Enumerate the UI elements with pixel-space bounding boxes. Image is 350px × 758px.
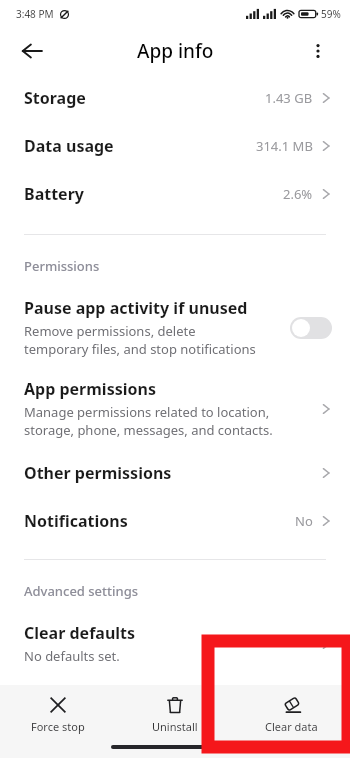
button[interactable]: Notifications	[0, 497, 350, 545]
staticText: Remove permissions, delete	[24, 322, 196, 340]
button[interactable]: Uninstall	[116, 689, 233, 740]
button[interactable]: Other permissions	[0, 449, 350, 497]
staticText: 2.6%	[283, 185, 313, 203]
button[interactable]: App permissions	[0, 368, 350, 449]
button[interactable]: Pause app activity if unused	[0, 287, 350, 368]
button[interactable]: Battery	[0, 170, 350, 218]
staticText: 314.1 MB	[256, 137, 313, 155]
staticText: 3:48 PM	[16, 7, 54, 21]
staticText: 1.43 GB	[265, 89, 313, 107]
staticText: Clear data	[265, 719, 318, 734]
button[interactable]: Force stop	[0, 689, 116, 740]
button[interactable]: Pause app activity if unused toggle	[290, 317, 332, 339]
staticText: App permissions	[24, 378, 156, 400]
button[interactable]: Back	[12, 31, 52, 71]
staticText: Advanced settings	[24, 582, 139, 600]
staticText: Force stop	[31, 719, 85, 734]
button[interactable]: Clear data	[233, 689, 350, 740]
staticText: Manage permissions related to location,	[24, 403, 270, 421]
staticText: App info	[137, 38, 214, 64]
staticText: Battery	[24, 183, 84, 205]
staticText: Pause app activity if unused	[24, 297, 248, 319]
staticText: No	[295, 512, 313, 530]
button[interactable]: More options	[298, 31, 338, 71]
staticText: Data usage	[24, 135, 114, 157]
staticText: storage, phone, messages, and contacts.	[24, 421, 273, 439]
button[interactable]: Data usage	[0, 122, 350, 170]
staticText: Permissions	[24, 257, 100, 275]
staticText: Storage	[24, 87, 86, 109]
staticText: 59%	[321, 7, 341, 21]
staticText: Other permissions	[24, 462, 172, 484]
staticText: No defaults set.	[24, 647, 120, 665]
button[interactable]: Clear defaults	[0, 612, 350, 675]
staticText: Uninstall	[152, 719, 198, 734]
staticText: Notifications	[24, 510, 128, 532]
button[interactable]: Storage	[0, 74, 350, 122]
staticText: Clear defaults	[24, 622, 136, 644]
staticText: temporary files, and stop notifications	[24, 340, 256, 358]
